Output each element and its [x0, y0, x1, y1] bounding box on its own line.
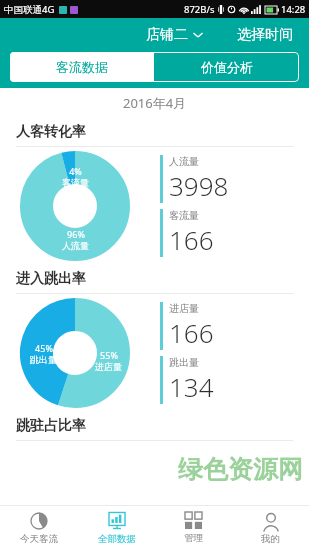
staticText: 今天客流	[20, 533, 58, 545]
button[interactable]: 客流数据	[10, 52, 154, 82]
staticText: 全部数据	[98, 533, 136, 545]
staticText: 4%	[69, 165, 82, 177]
button[interactable]: 店铺二	[140, 21, 209, 49]
button[interactable]: 管理	[155, 506, 232, 550]
staticText: 价值分析	[201, 59, 253, 75]
staticText: 店铺二	[146, 26, 188, 44]
staticText: 人流量	[62, 240, 89, 251]
staticText: 3998	[169, 168, 229, 203]
staticText: 绿色资源网	[178, 454, 303, 485]
staticText: 人客转化率	[16, 123, 86, 141]
staticText: 管理	[184, 532, 203, 544]
staticText: 跳出量	[169, 356, 199, 369]
staticText: 跳驻占比率	[16, 417, 86, 435]
staticText: 进入跳出率	[16, 270, 86, 288]
staticText: 96%	[67, 228, 85, 240]
staticText: 134	[169, 369, 214, 404]
staticText: 2016年4月	[123, 94, 187, 112]
staticText: 进店量	[169, 302, 199, 315]
staticText: 跳出量	[30, 354, 57, 365]
staticText: 人流量	[169, 155, 199, 168]
staticText: 客流数据	[56, 59, 108, 75]
staticText: 166	[169, 222, 214, 257]
staticText: 14:28	[281, 3, 306, 16]
staticText: 166	[169, 315, 214, 350]
button[interactable]: 今天客流	[0, 506, 78, 550]
staticText: 55%	[100, 349, 118, 361]
staticText: 45%	[35, 342, 53, 354]
button[interactable]: 全部数据	[78, 506, 155, 550]
button[interactable]: 价值分析	[154, 52, 299, 82]
staticText: 我的	[261, 533, 280, 545]
staticText: 客流量	[169, 209, 199, 222]
staticText: 选择时间	[237, 26, 293, 44]
staticText: 客流量	[62, 177, 89, 188]
staticText: 进店量	[95, 361, 122, 372]
staticText: 中国联通4G	[4, 3, 55, 16]
button[interactable]: 选择时间	[231, 21, 299, 49]
button[interactable]: 我的	[232, 506, 309, 550]
staticText: 872B/s	[184, 3, 215, 16]
